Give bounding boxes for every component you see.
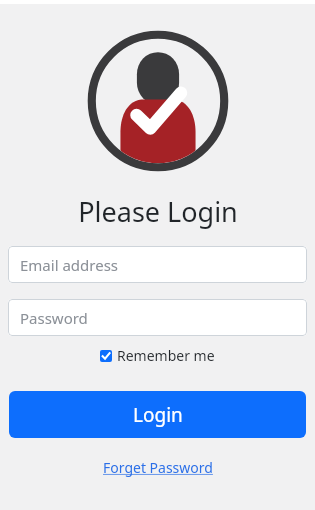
staticText: Forget Password: [103, 458, 213, 477]
button[interactable]: Forget Password: [99, 456, 217, 479]
button[interactable]: Remember me: [98, 345, 217, 366]
button[interactable]: Login: [9, 391, 306, 438]
staticText: Login: [133, 402, 183, 428]
staticText: Remember me: [117, 346, 215, 365]
button[interactable]: Password: [8, 299, 307, 336]
staticText: Please Login: [78, 193, 238, 230]
staticText: Email address: [20, 255, 119, 275]
staticText: Password: [20, 308, 88, 328]
other: User avatar: [84, 27, 232, 175]
button[interactable]: Email address: [8, 246, 307, 283]
